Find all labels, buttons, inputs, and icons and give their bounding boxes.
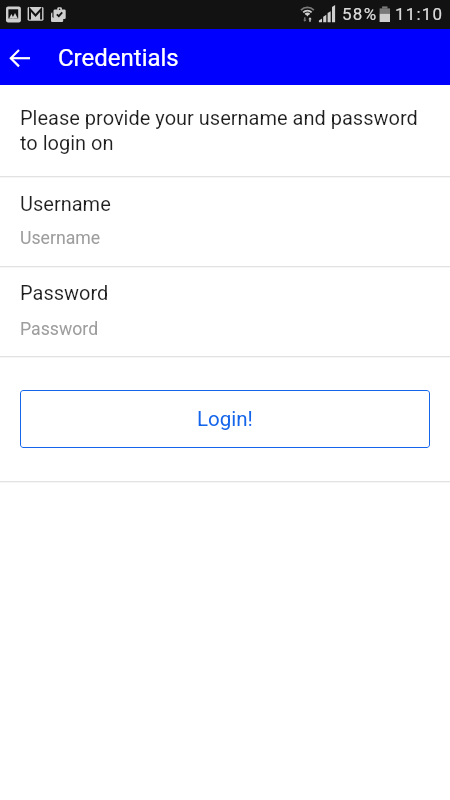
- staticText: 11:10: [395, 4, 444, 24]
- staticText: Username: [20, 228, 101, 249]
- staticText: Password: [20, 281, 109, 304]
- button[interactable]: Navigate up: [0, 29, 42, 85]
- button[interactable]: Login!: [20, 390, 430, 448]
- staticText: Login!: [197, 407, 253, 431]
- button[interactable]: Password: [0, 267, 450, 356]
- staticText: Please provide your username and passwor…: [20, 106, 420, 155]
- staticText: Username: [20, 192, 111, 215]
- button[interactable]: Username: [0, 177, 450, 266]
- staticText: Credentials: [58, 44, 179, 72]
- staticText: 58%: [342, 4, 378, 24]
- staticText: Password: [20, 319, 99, 340]
